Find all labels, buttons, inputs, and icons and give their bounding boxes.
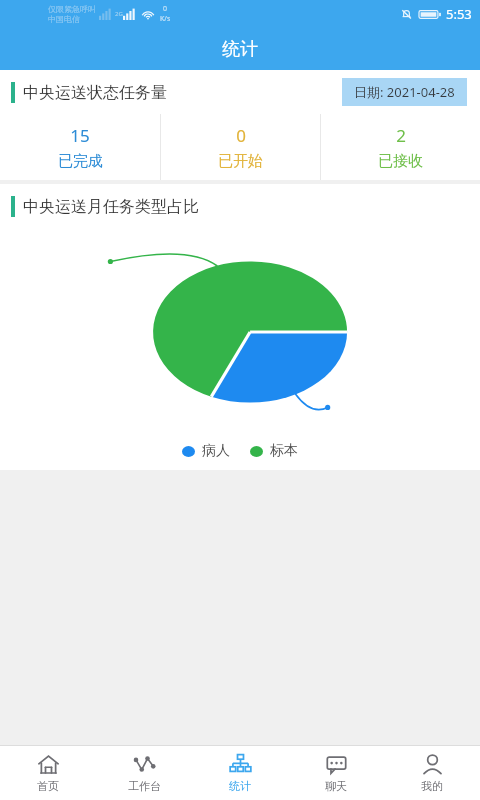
staticText: 2 <box>396 124 406 147</box>
staticText: 日期: 2021-04-28 <box>354 83 455 101</box>
button[interactable]: 标本 <box>250 442 298 460</box>
staticText: 仅限紧急呼叫 <box>48 4 96 14</box>
button[interactable]: 0 <box>161 114 320 180</box>
staticText: 中国电信 <box>48 14 80 24</box>
staticText: 5:53 <box>446 5 472 23</box>
button[interactable]: 统计 <box>192 746 288 800</box>
staticText: K/s <box>160 14 171 24</box>
staticText: 统计 <box>229 779 251 793</box>
staticText: 统计 <box>222 38 258 61</box>
staticText: 首页 <box>37 779 59 793</box>
button[interactable]: 我的 <box>384 746 480 800</box>
staticText: 标本 <box>270 442 298 460</box>
staticText: 中央运送状态任务量 <box>23 83 167 103</box>
button[interactable]: 2 <box>321 114 480 180</box>
button[interactable]: 15 <box>0 114 160 180</box>
button[interactable]: 聊天 <box>288 746 384 800</box>
staticText: 已完成 <box>58 152 103 171</box>
staticText: 病人 <box>202 442 230 460</box>
staticText: 已接收 <box>378 152 423 171</box>
button[interactable]: 首页 <box>0 746 96 800</box>
staticText: 我的 <box>421 779 443 793</box>
staticText: 工作台 <box>128 779 161 793</box>
staticText: 中央运送月任务类型占比 <box>23 197 199 217</box>
staticText: 已开始 <box>218 152 263 171</box>
staticText: 0 <box>163 4 168 14</box>
button[interactable]: 日期: 2021-04-28 <box>342 78 467 106</box>
staticText: 2G <box>115 10 123 18</box>
staticText: 聊天 <box>325 779 347 793</box>
staticText: 0 <box>236 124 246 147</box>
staticText: 15 <box>70 124 90 147</box>
button[interactable]: 工作台 <box>96 746 192 800</box>
button[interactable]: 病人 <box>182 442 230 460</box>
